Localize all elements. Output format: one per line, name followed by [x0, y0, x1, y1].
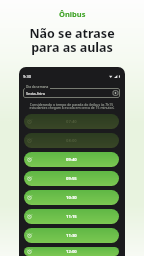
- staticText: 09:55: [66, 176, 77, 182]
- staticText: 9:30: [23, 74, 31, 79]
- button[interactable]: 12:00: [24, 247, 119, 256]
- other: Alarme: [27, 176, 32, 181]
- staticText: Sexta-feira: [26, 91, 45, 96]
- button[interactable]: Sexta-feira: [23, 88, 120, 98]
- button[interactable]: 08:00: [24, 133, 119, 148]
- other: Alarme: [27, 233, 32, 238]
- staticText: 11:15: [66, 214, 77, 220]
- other: Alarme: [27, 195, 32, 200]
- staticText: 10:30: [66, 195, 77, 201]
- other: Alarme: [27, 157, 32, 162]
- button[interactable]: 10:30: [24, 190, 119, 205]
- staticText: 08:00: [66, 138, 77, 144]
- other: Alarme: [27, 214, 32, 219]
- staticText: Não se atrase para as aulas: [29, 25, 115, 55]
- staticText: 09:40: [66, 157, 77, 163]
- staticText: Considerando o tempo de parada do ônibus…: [23, 102, 121, 110]
- staticText: 07:40: [66, 119, 77, 125]
- staticText: Ônibus: [59, 9, 86, 19]
- staticText: 12:00: [66, 249, 77, 255]
- button[interactable]: 11:30: [24, 228, 119, 243]
- staticText: Dia da semana: [26, 85, 49, 89]
- other: Alarme: [27, 119, 32, 124]
- button[interactable]: 11:15: [24, 209, 119, 224]
- button[interactable]: 09:55: [24, 171, 119, 186]
- other: Alarme: [27, 138, 32, 143]
- button[interactable]: 07:40: [24, 114, 119, 129]
- other: Abrir seletor: [113, 90, 118, 96]
- button[interactable]: 09:40: [24, 152, 119, 167]
- staticText: 11:30: [66, 233, 77, 239]
- other: Alarme: [27, 249, 32, 254]
